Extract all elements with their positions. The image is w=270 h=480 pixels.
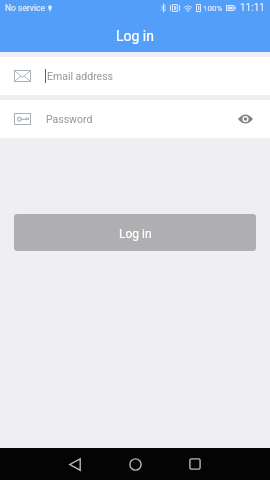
staticText: 11:11 (240, 2, 265, 14)
staticText: Log in (119, 227, 152, 241)
button[interactable]: Email address (0, 57, 270, 95)
staticText: Log in (116, 28, 154, 44)
button[interactable]: Show password (234, 108, 256, 130)
button[interactable]: Home (105, 448, 165, 480)
button[interactable]: Back (45, 448, 105, 480)
button[interactable]: Log in (14, 214, 256, 251)
staticText: 100% (203, 4, 223, 13)
staticText: Email address (47, 70, 114, 82)
button[interactable]: Recent apps (165, 448, 225, 480)
staticText: No service (5, 3, 46, 13)
button[interactable]: Password (0, 100, 270, 138)
staticText: Password (46, 113, 93, 125)
